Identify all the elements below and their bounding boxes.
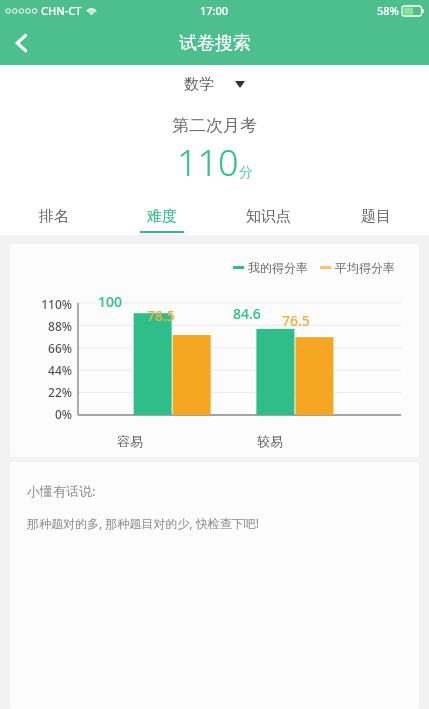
button[interactable]: 数学 xyxy=(0,65,429,103)
staticText: 110% xyxy=(12,296,72,312)
staticText: 110 xyxy=(177,138,239,187)
staticText: 容易 xyxy=(117,433,143,449)
staticText: 66% xyxy=(12,340,72,356)
staticText: 排名 xyxy=(39,207,69,226)
staticText: 那种题对的多, 那种题目对的少, 快检查下吧! xyxy=(27,515,259,531)
staticText: 0% xyxy=(12,406,72,422)
staticText: 小懂有话说: xyxy=(27,482,96,500)
staticText: 知识点 xyxy=(246,207,291,226)
staticText: 第二次月考 xyxy=(172,115,257,136)
staticText: 76.5 xyxy=(282,311,310,330)
staticText: 88% xyxy=(12,318,72,334)
staticText: 84.6 xyxy=(233,304,261,323)
button[interactable]: 排名 xyxy=(0,197,108,235)
staticText: 17:00 xyxy=(200,3,229,18)
staticText: 较易 xyxy=(257,433,283,449)
button[interactable]: Back xyxy=(0,21,44,65)
staticText: 数学 xyxy=(184,75,214,94)
staticText: 难度 xyxy=(147,207,177,226)
button[interactable]: 知识点 xyxy=(215,197,322,235)
staticText: 我的得分率 xyxy=(248,260,308,275)
staticText: 58% xyxy=(377,3,399,18)
staticText: 平均得分率 xyxy=(335,260,395,275)
staticText: 分 xyxy=(239,164,253,182)
staticText: 22% xyxy=(12,384,72,400)
staticText: 78.5 xyxy=(147,306,175,325)
staticText: 44% xyxy=(12,362,72,378)
staticText: CHN-CT xyxy=(41,3,82,18)
button[interactable]: 难度 xyxy=(108,197,215,235)
staticText: 题目 xyxy=(361,207,391,226)
staticText: 100 xyxy=(98,292,123,311)
staticText: 试卷搜索 xyxy=(179,32,251,55)
button[interactable]: 题目 xyxy=(322,197,429,235)
